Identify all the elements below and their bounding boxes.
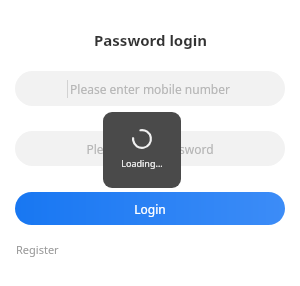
staticText: Register: [16, 242, 59, 257]
staticText: Password login: [94, 30, 207, 50]
staticText: Please enter mobile number: [70, 81, 230, 97]
staticText: Login: [134, 201, 166, 217]
staticText: Please enter password: [86, 141, 214, 157]
staticText: Loading...: [121, 157, 163, 169]
button[interactable]: Please enter password: [15, 131, 285, 166]
button[interactable]: Please enter mobile number: [15, 71, 285, 106]
button[interactable]: Register: [15, 240, 60, 259]
button[interactable]: Login: [15, 192, 285, 225]
other: Loading: [103, 112, 181, 188]
